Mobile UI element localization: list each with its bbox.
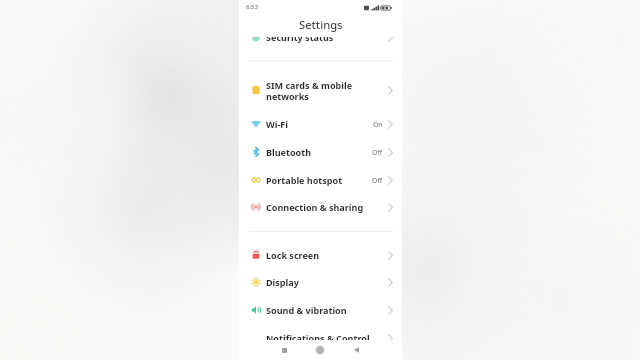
button[interactable]: Security status (239, 23, 402, 51)
staticText: Bluetooth (266, 146, 312, 158)
button[interactable]: SIM cards & mobile networks (239, 72, 402, 108)
staticText: Settings (299, 17, 343, 32)
staticText: Connection & sharing (266, 201, 364, 213)
staticText: Portable hotspot (266, 174, 343, 186)
staticText: Off (372, 176, 383, 185)
staticText: Security status (266, 31, 334, 43)
button[interactable]: Wi-Fi (239, 110, 402, 138)
staticText: Wi-Fi (266, 118, 289, 130)
staticText: Off (372, 148, 383, 157)
staticText: Display (266, 276, 299, 288)
button[interactable]: Bluetooth (239, 138, 402, 166)
button[interactable]: Display (239, 268, 402, 296)
staticText: 6:53 (246, 3, 258, 11)
button[interactable]: Notifications & Control (239, 324, 402, 352)
staticText: Notifications & Control (266, 332, 370, 344)
staticText: SIM cards & mobile networks (266, 79, 353, 102)
button[interactable]: Sound & vibration (239, 296, 402, 324)
staticText: On (373, 120, 383, 129)
button[interactable]: Lock screen (239, 241, 402, 269)
button[interactable]: Home (312, 342, 328, 358)
button[interactable]: Recents (276, 342, 292, 358)
button[interactable]: Back (348, 342, 364, 358)
button[interactable]: Portable hotspot (239, 166, 402, 194)
staticText: Lock screen (266, 249, 320, 261)
button[interactable]: Connection & sharing (239, 193, 402, 221)
staticText: Sound & vibration (266, 304, 347, 316)
